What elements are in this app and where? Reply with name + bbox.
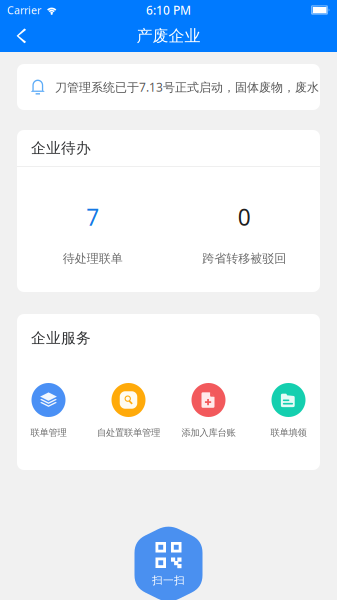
staticText: 企业待办 (31, 139, 91, 157)
button[interactable]: 联单管理 (23, 383, 73, 438)
staticText: 企业服务 (31, 329, 91, 347)
staticText: 联单填领 (270, 427, 306, 438)
button[interactable]: 添加入库台账 (183, 383, 233, 438)
button[interactable]: 刀管理系统已于7.13号正式启动，固体废物，废水 (17, 64, 320, 110)
button[interactable]: Back (0, 20, 38, 52)
staticText: 刀管理系统已于7.13号正式启动，固体废物，废水 (55, 79, 319, 95)
staticText: 扫一扫 (152, 574, 185, 587)
staticText: 自处置联单管理 (97, 427, 160, 438)
staticText: 跨省转移被驳回 (202, 251, 286, 266)
staticText: 6:10 PM (146, 2, 191, 18)
button[interactable]: 自处置联单管理 (103, 383, 153, 438)
button[interactable]: 7 (17, 202, 168, 266)
staticText: Carrier (7, 3, 41, 17)
button[interactable]: 联单填领 (263, 383, 313, 438)
staticText: 7 (86, 202, 99, 232)
staticText: 待处理联单 (63, 251, 123, 266)
staticText: 0 (238, 202, 251, 232)
staticText: 产废企业 (136, 26, 200, 46)
staticText: 联单管理 (30, 427, 66, 438)
button[interactable]: 扫一扫 (134, 524, 202, 600)
button[interactable]: 0 (168, 202, 320, 266)
staticText: 添加入库台账 (181, 427, 235, 438)
